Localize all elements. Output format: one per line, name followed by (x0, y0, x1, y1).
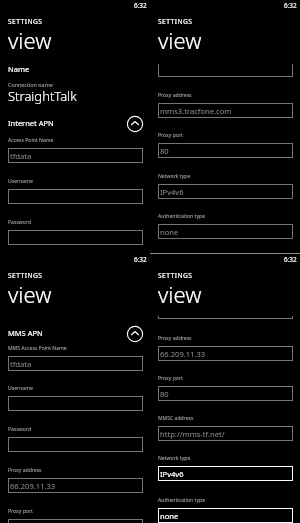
button[interactable] (8, 519, 143, 523)
staticText: 6:32 (134, 255, 147, 264)
staticText: SETTINGS (158, 271, 193, 280)
staticText: Name (8, 64, 30, 74)
staticText: IPv4v6 (160, 469, 184, 479)
staticText: Network type (158, 455, 191, 462)
staticText: view (8, 279, 52, 309)
button[interactable] (8, 189, 143, 204)
staticText: Proxy address (8, 467, 42, 474)
staticText: Proxy port (158, 132, 183, 139)
staticText: Network type (158, 173, 191, 180)
staticText: 6:32 (284, 255, 297, 264)
staticText: http://mms-tf.net/ (160, 429, 225, 439)
staticText: Internet APN (8, 118, 54, 128)
staticText: Connection name (8, 81, 53, 88)
button[interactable] (8, 230, 143, 245)
staticText: 80 (160, 146, 169, 156)
staticText: Username (8, 178, 33, 185)
button[interactable]: 66.209.11.33 (158, 346, 293, 361)
button[interactable]: Collapse section (126, 325, 144, 343)
staticText: view (158, 25, 202, 55)
staticText: 80 (160, 389, 169, 399)
staticText: Proxy address (158, 335, 192, 342)
staticText: Proxy port (8, 508, 33, 515)
staticText: MMS Access Point Name (8, 345, 67, 352)
staticText: Username (8, 385, 33, 392)
staticText: view (8, 25, 52, 55)
staticText: mms3.tracfone.com (160, 106, 232, 116)
button[interactable]: IPv4v6 (158, 466, 293, 481)
staticText: view (158, 279, 202, 309)
staticText: none (160, 227, 179, 237)
staticText: 6:32 (134, 1, 147, 10)
button[interactable]: 80 (158, 143, 293, 158)
staticText: 66.209.11.33 (160, 349, 206, 359)
button[interactable]: 66.209.11.33 (8, 478, 143, 493)
button[interactable]: IPv4v6 (158, 184, 293, 199)
staticText: IPv4v6 (160, 187, 184, 197)
button[interactable]: mms3.tracfone.com (158, 103, 293, 118)
button[interactable]: http://mms-tf.net/ (158, 426, 293, 441)
staticText: SETTINGS (8, 271, 43, 280)
staticText: tfdata (10, 151, 32, 161)
staticText: Proxy port (158, 375, 183, 382)
staticText: 66.209.11.33 (10, 481, 56, 491)
button[interactable]: Collapse section (126, 115, 144, 133)
staticText: StraightTalk (8, 87, 77, 105)
staticText: Authentication type (158, 213, 206, 220)
button[interactable]: tfdata (8, 356, 143, 371)
button[interactable]: 80 (158, 386, 293, 401)
staticText: SETTINGS (8, 17, 43, 26)
button[interactable]: none (158, 224, 293, 239)
button[interactable]: tfdata (8, 148, 143, 163)
staticText: tfdata (10, 359, 32, 369)
button[interactable] (8, 396, 143, 411)
staticText: 6:32 (284, 1, 297, 10)
staticText: none (160, 511, 179, 521)
staticText: Password (8, 219, 32, 226)
staticText: Password (8, 426, 32, 433)
button[interactable]: none (158, 508, 293, 523)
staticText: MMS APN (8, 328, 43, 338)
staticText: Proxy address (158, 92, 192, 99)
staticText: SETTINGS (158, 17, 193, 26)
staticText: Access Point Name (8, 137, 54, 144)
button[interactable] (8, 437, 143, 452)
staticText: Authentication type (158, 497, 206, 504)
staticText: MMSC address (158, 415, 194, 422)
